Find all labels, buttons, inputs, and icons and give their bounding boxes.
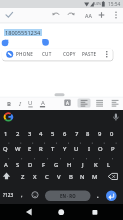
staticText: 84% bbox=[93, 1, 102, 7]
button[interactable] bbox=[1, 111, 15, 124]
button[interactable]: 8 bbox=[82, 127, 93, 140]
button[interactable]: , bbox=[18, 189, 26, 200]
button[interactable]: Y bbox=[59, 142, 70, 155]
button[interactable] bbox=[49, 9, 62, 22]
button[interactable] bbox=[95, 9, 108, 22]
staticText: B bbox=[7, 100, 11, 108]
button[interactable] bbox=[93, 97, 106, 109]
button[interactable]: COPY bbox=[61, 49, 77, 59]
button[interactable]: V bbox=[53, 170, 64, 183]
button[interactable] bbox=[1, 170, 13, 183]
staticText: , bbox=[21, 191, 23, 199]
button[interactable] bbox=[110, 9, 122, 22]
button[interactable]: K bbox=[90, 158, 101, 171]
button[interactable]: A bbox=[38, 97, 47, 108]
button[interactable] bbox=[109, 111, 122, 124]
button[interactable]: T bbox=[47, 142, 58, 155]
button[interactable]: 3 bbox=[24, 127, 35, 140]
button[interactable]: R bbox=[35, 142, 46, 155]
button[interactable]: E bbox=[24, 142, 35, 155]
staticText: COPY bbox=[63, 51, 76, 57]
button[interactable] bbox=[30, 189, 41, 201]
button[interactable]: S bbox=[12, 158, 23, 171]
button[interactable]: I bbox=[15, 98, 24, 109]
button[interactable]: 1 bbox=[0, 127, 11, 140]
button[interactable] bbox=[55, 206, 67, 218]
button[interactable] bbox=[61, 97, 73, 109]
button[interactable]: O bbox=[95, 142, 106, 155]
button[interactable]: 4 bbox=[35, 127, 46, 140]
button[interactable]: B bbox=[4, 98, 13, 109]
button[interactable]: 6 bbox=[59, 127, 70, 140]
button[interactable] bbox=[90, 206, 102, 218]
staticText: A bbox=[66, 100, 69, 106]
button[interactable] bbox=[2, 49, 113, 61]
staticText: R bbox=[39, 145, 43, 153]
button[interactable] bbox=[2, 9, 16, 22]
staticText: Z bbox=[21, 173, 25, 181]
staticText: 9 bbox=[98, 130, 102, 138]
button[interactable] bbox=[24, 206, 36, 218]
staticText: 8 bbox=[86, 130, 90, 138]
staticText: Q bbox=[3, 145, 8, 153]
button[interactable]: H bbox=[64, 158, 75, 171]
button[interactable]: G bbox=[51, 158, 62, 171]
button[interactable]: B bbox=[65, 170, 76, 183]
button[interactable]: D bbox=[25, 158, 36, 171]
staticText: 2 bbox=[16, 130, 20, 138]
staticText: EN · RO bbox=[60, 193, 76, 199]
staticText: I bbox=[88, 145, 90, 153]
button[interactable]: F bbox=[38, 158, 49, 171]
button[interactable]: 5 bbox=[47, 127, 58, 140]
staticText: 3 bbox=[28, 130, 32, 138]
staticText: 7 bbox=[75, 130, 79, 138]
staticText: 1 bbox=[4, 130, 8, 138]
button[interactable]: Z bbox=[17, 170, 28, 183]
button[interactable]: P bbox=[107, 142, 118, 155]
button[interactable]: X bbox=[29, 170, 40, 183]
staticText: J bbox=[82, 161, 84, 169]
button[interactable]: W bbox=[12, 142, 23, 155]
staticText: 15:54 bbox=[108, 1, 121, 8]
button[interactable]: AA bbox=[82, 9, 94, 21]
button[interactable]: 7 bbox=[71, 127, 82, 140]
button[interactable] bbox=[109, 97, 122, 109]
button[interactable]: Q bbox=[0, 142, 11, 155]
staticText: G bbox=[54, 161, 59, 169]
staticText: N bbox=[80, 173, 85, 181]
staticText: K bbox=[94, 161, 98, 169]
button[interactable]: PHONE bbox=[14, 49, 34, 59]
staticText: A bbox=[4, 161, 8, 169]
button[interactable]: 2 bbox=[12, 127, 23, 140]
button[interactable]: EN · RO bbox=[45, 191, 90, 201]
staticText: 5 bbox=[51, 130, 55, 138]
button[interactable] bbox=[77, 97, 91, 109]
button[interactable] bbox=[100, 49, 112, 60]
button[interactable] bbox=[106, 170, 120, 183]
button[interactable]: 0 bbox=[106, 127, 117, 140]
button[interactable]: PASTE bbox=[81, 49, 98, 59]
staticText: CUT bbox=[42, 51, 52, 57]
button[interactable]: 9 bbox=[94, 127, 105, 140]
staticText: M bbox=[92, 173, 98, 181]
button[interactable]: I bbox=[83, 142, 94, 155]
button[interactable]: M bbox=[89, 170, 100, 183]
staticText: I bbox=[19, 100, 21, 108]
staticText: S bbox=[16, 161, 20, 169]
button[interactable]: CUT bbox=[40, 49, 54, 59]
staticText: W bbox=[15, 145, 21, 153]
button[interactable]: C bbox=[41, 170, 52, 183]
button[interactable] bbox=[93, 189, 103, 201]
staticText: V bbox=[57, 173, 61, 181]
button[interactable]: U bbox=[71, 142, 82, 155]
button[interactable] bbox=[106, 190, 117, 201]
button[interactable]: ?123 bbox=[1, 189, 15, 200]
button[interactable]: A bbox=[0, 158, 11, 171]
staticText: PHONE bbox=[16, 51, 33, 57]
button[interactable]: U bbox=[26, 97, 35, 108]
button[interactable]: L bbox=[103, 158, 114, 171]
button[interactable] bbox=[64, 9, 77, 22]
button[interactable]: N bbox=[77, 170, 88, 183]
button[interactable]: J bbox=[77, 158, 88, 171]
staticText: 4 bbox=[39, 130, 43, 138]
